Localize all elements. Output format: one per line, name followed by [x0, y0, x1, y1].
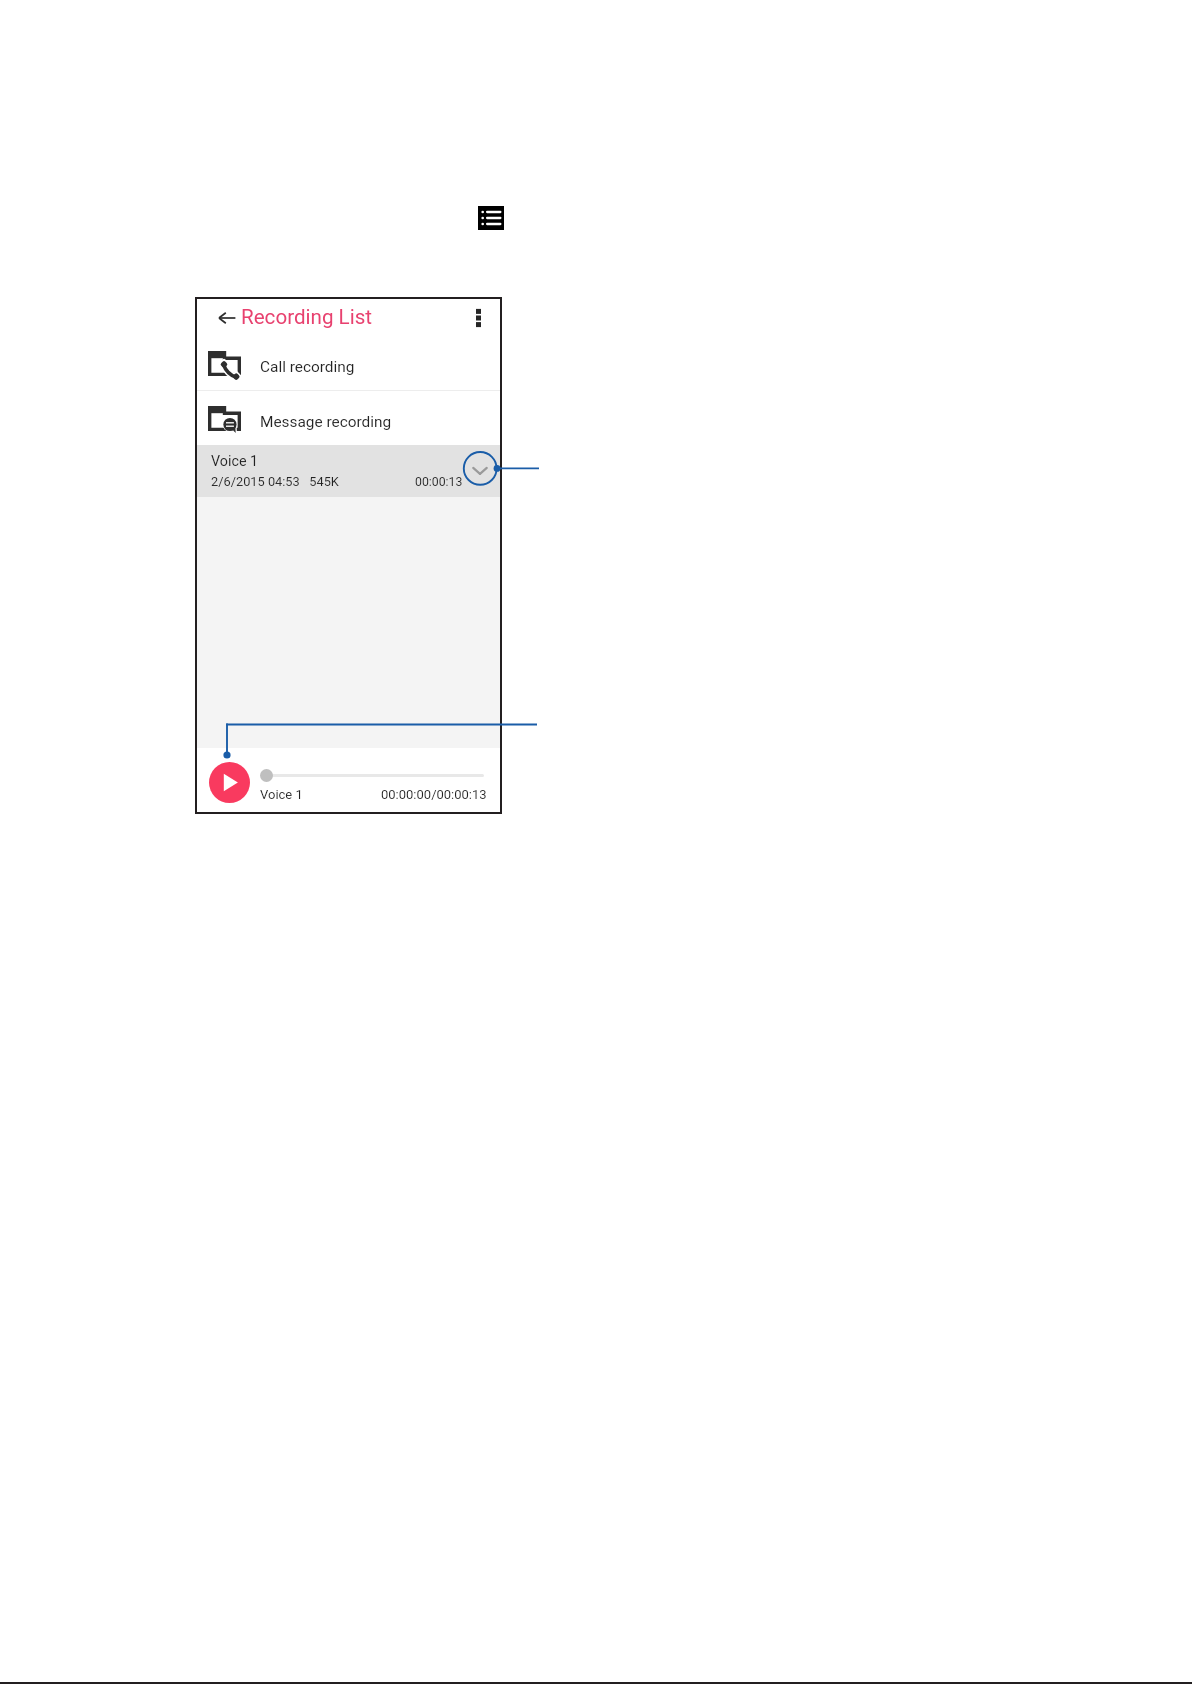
- button[interactable]: Back: [217, 308, 237, 328]
- button[interactable]: Message recording: [195, 391, 502, 445]
- staticText: 00:00:00/00:00:13: [381, 787, 487, 802]
- staticText: Message recording: [260, 413, 392, 431]
- staticText: Recording List: [241, 305, 373, 329]
- staticText: Call recording: [260, 358, 355, 376]
- button[interactable]: Expand: [467, 458, 493, 484]
- staticText: Voice 1: [260, 787, 303, 802]
- button[interactable]: Play: [209, 762, 250, 803]
- button[interactable]: Call recording: [195, 336, 502, 390]
- button[interactable]: Voice 1: [195, 445, 502, 497]
- staticText: 2/6/2015 04:53 545K: [211, 474, 339, 489]
- button[interactable]: More options: [465, 303, 492, 333]
- button[interactable]: List: [478, 206, 504, 230]
- staticText: 00:00:13: [415, 475, 463, 489]
- staticText: Voice 1: [211, 453, 259, 470]
